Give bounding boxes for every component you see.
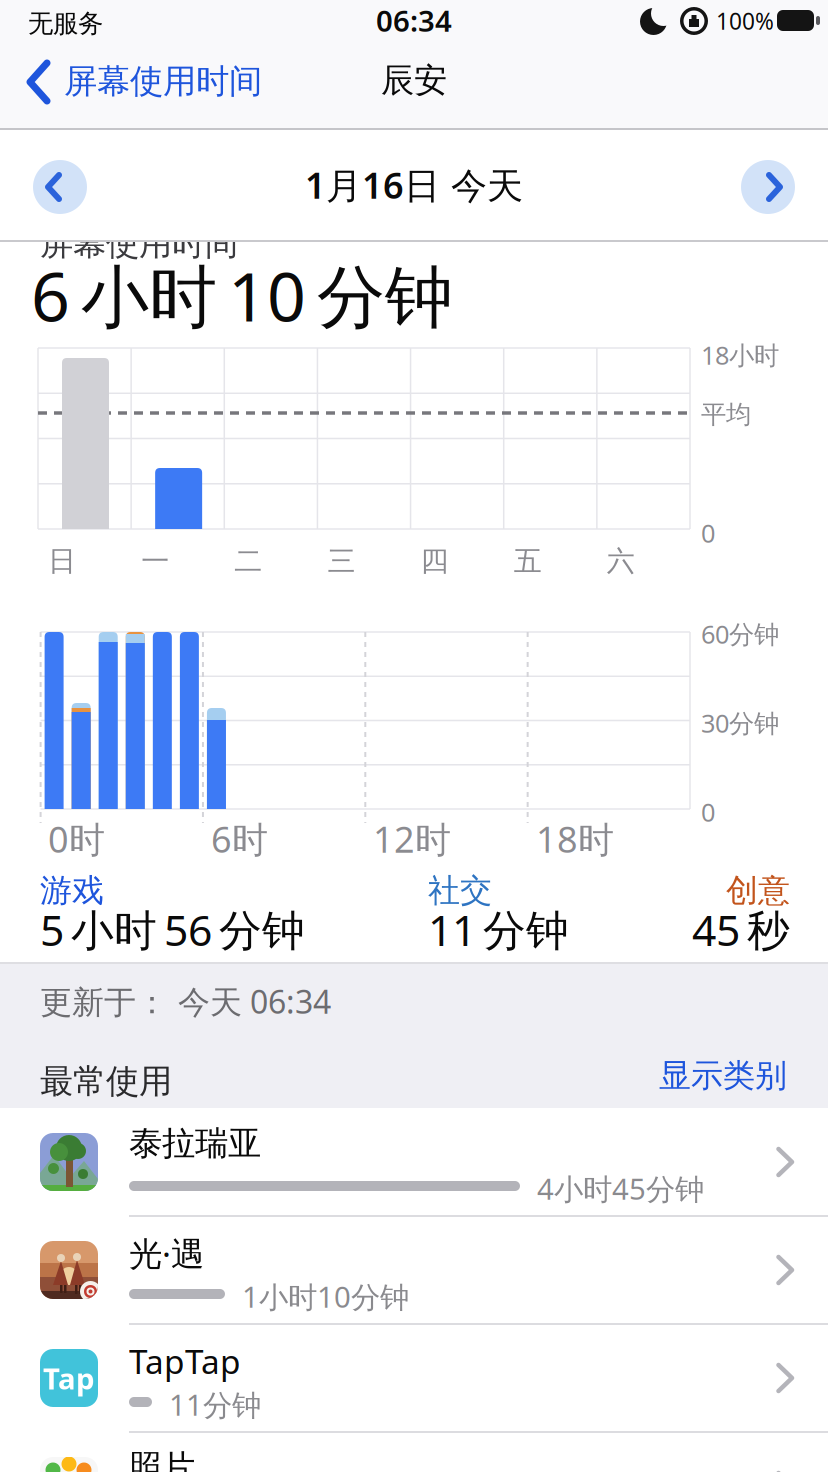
staticText: 创意 <box>726 871 790 910</box>
staticText: 二 <box>234 544 262 578</box>
staticText: 4小时45分钟 <box>537 1169 704 1208</box>
staticText: 45 秒 <box>692 901 790 958</box>
staticText: 30分钟 <box>701 706 779 740</box>
button[interactable] <box>33 160 87 214</box>
staticText: 日 <box>48 544 76 578</box>
staticText: 12时 <box>373 815 451 863</box>
staticText: 5 小时 56 分钟 <box>40 901 305 958</box>
staticText: 0 <box>701 795 715 829</box>
staticText: 最常使用 <box>40 1061 172 1102</box>
staticText: 11分钟 <box>169 1385 261 1424</box>
staticText: 一 <box>141 544 169 578</box>
staticText: 屏幕使用时间 <box>40 223 238 264</box>
staticText: Tap <box>43 1358 95 1397</box>
staticText: 辰安 <box>381 60 447 101</box>
staticText: 六 <box>607 544 635 578</box>
staticText: 社交 <box>428 871 492 910</box>
staticText: 屏幕使用时间 <box>64 61 262 102</box>
button[interactable]: 照片 <box>0 1432 828 1472</box>
staticText: 显示类别 <box>659 1056 787 1095</box>
staticText: 0时 <box>48 815 105 863</box>
staticText: 6时 <box>211 815 268 863</box>
staticText: 0 <box>701 516 715 550</box>
staticText: 五 <box>514 544 542 578</box>
staticText: 照片 <box>129 1447 195 1472</box>
staticText: 100% <box>716 6 774 36</box>
staticText: 6 小时 10 分钟 <box>31 250 453 340</box>
staticText: 60分钟 <box>701 617 779 651</box>
staticText: 无服务 <box>28 8 103 39</box>
staticText: 游戏 <box>40 871 104 910</box>
staticText: 光·遇 <box>129 1231 204 1275</box>
staticText: 18时 <box>536 815 614 863</box>
button[interactable]: 泰拉瑞亚 <box>0 1108 828 1216</box>
button[interactable]: 光·遇 <box>0 1216 828 1324</box>
staticText: 18小时 <box>701 338 779 372</box>
staticText: 泰拉瑞亚 <box>129 1123 261 1164</box>
staticText: 06:34 <box>376 1 452 40</box>
staticText: 更新于： 今天 06:34 <box>40 980 331 1022</box>
staticText: 1小时10分钟 <box>242 1277 409 1316</box>
staticText: 平均 <box>701 399 751 430</box>
button[interactable]: Tap <box>0 1324 828 1432</box>
staticText: 四 <box>421 544 449 578</box>
staticText: 11 分钟 <box>428 901 569 958</box>
staticText: 1月16日 今天 <box>305 161 523 209</box>
staticText: TapTap <box>129 1339 241 1383</box>
button[interactable]: 显示类别 <box>659 1056 787 1095</box>
staticText: 三 <box>327 544 355 578</box>
button[interactable] <box>741 160 795 214</box>
button[interactable]: 屏幕使用时间 <box>0 0 320 128</box>
